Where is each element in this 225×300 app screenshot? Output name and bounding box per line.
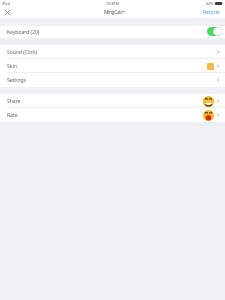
staticText: Recycle — [203, 9, 220, 16]
button[interactable]: Skin — [0, 59, 225, 73]
button[interactable]: Share — [0, 94, 225, 108]
button[interactable]: Recycle — [198, 7, 225, 18]
staticText: Sound (Click) — [7, 49, 38, 56]
staticText: Keyboard (20) — [7, 29, 40, 36]
button[interactable]: Sound (Click) — [0, 45, 225, 59]
staticText: Skin — [7, 63, 17, 70]
button[interactable]: Keyboard enabled toggle — [207, 27, 222, 36]
button[interactable]: Keyboard (20) — [0, 26, 225, 38]
staticText: 64% — [206, 1, 214, 6]
staticText: Settings — [7, 77, 26, 84]
staticText: Share — [7, 98, 21, 105]
staticText: MingCalc+ — [104, 9, 125, 15]
staticText: iPad — [2, 1, 10, 6]
button[interactable]: Close — [1, 7, 14, 18]
staticText: 10:18 PM — [106, 1, 119, 5]
button[interactable]: Rate — [0, 108, 225, 122]
staticText: Rate — [7, 112, 18, 119]
button[interactable]: Settings — [0, 73, 225, 87]
